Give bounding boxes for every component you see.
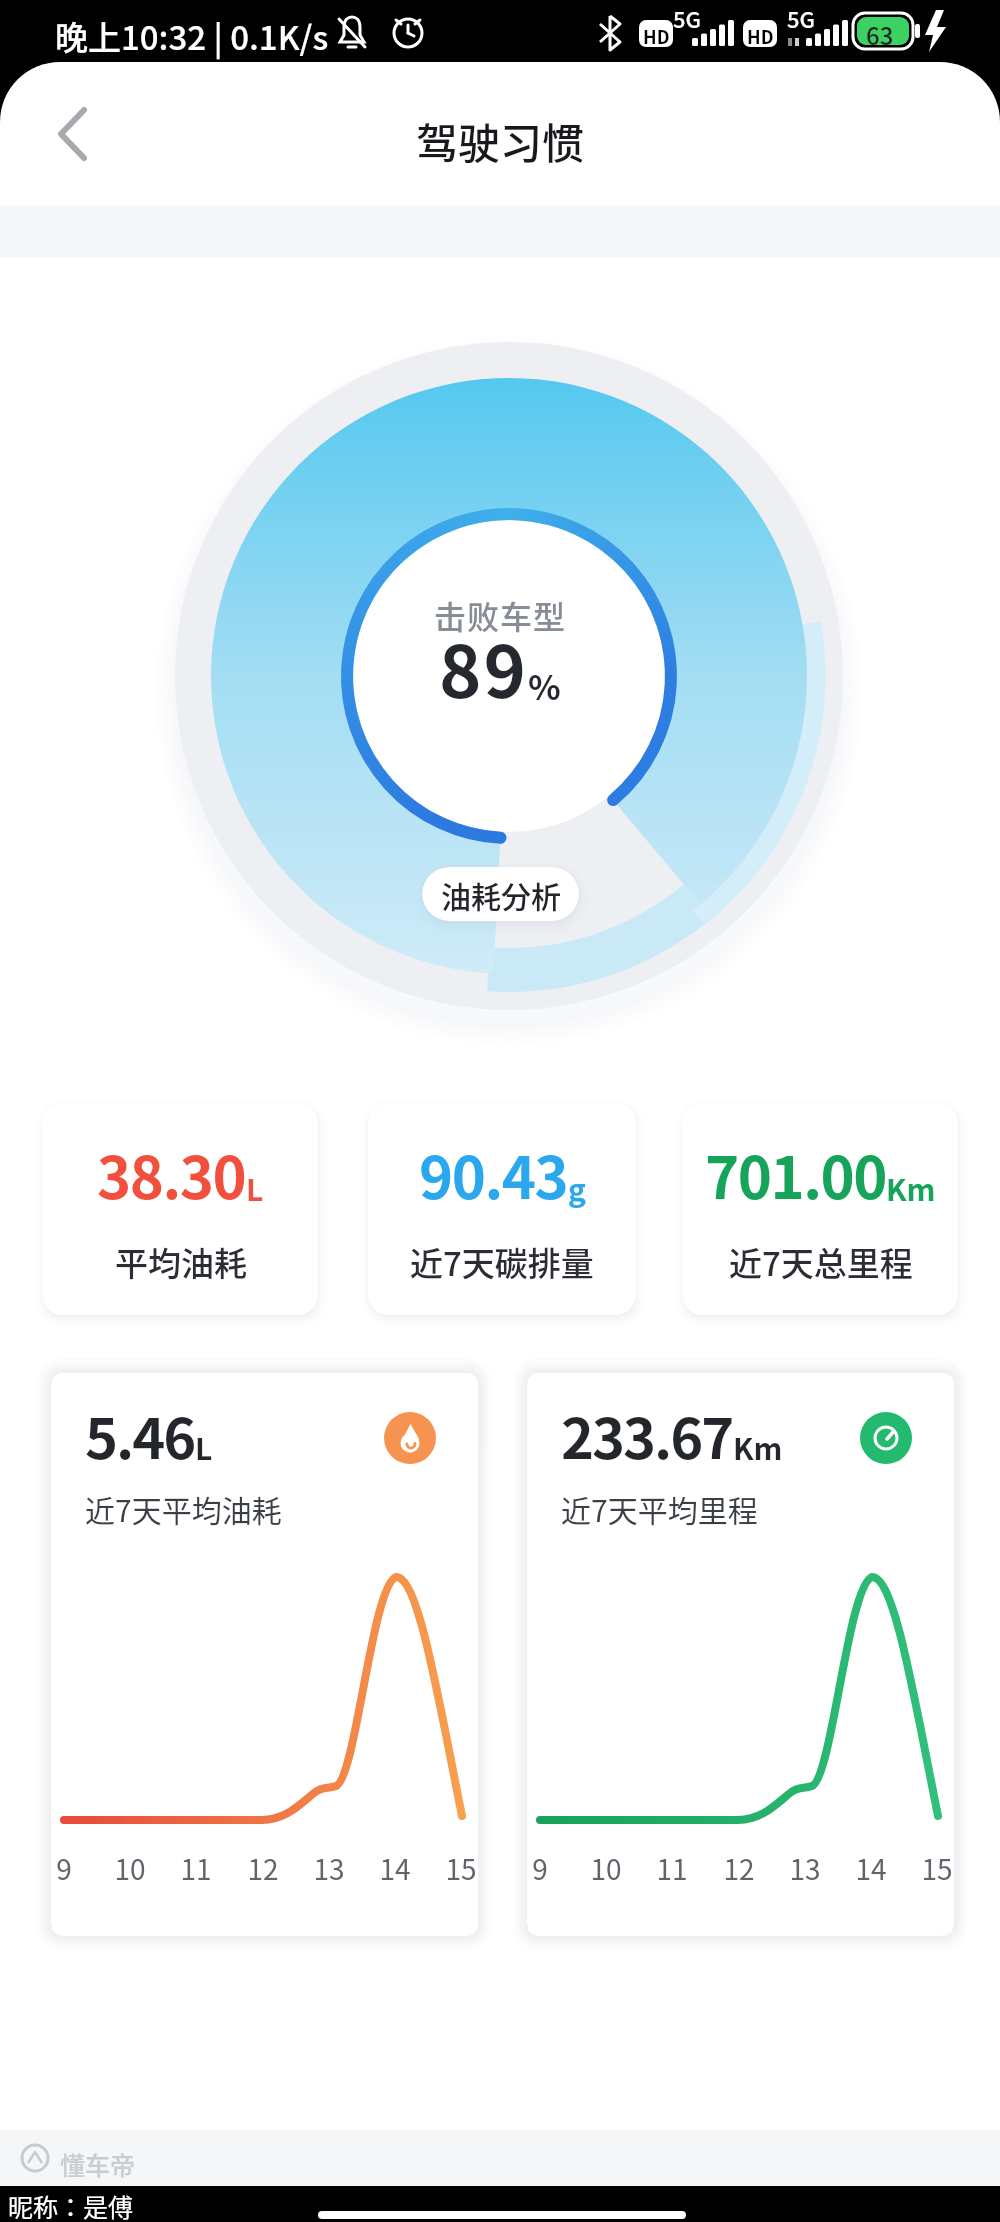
button[interactable]: 701.00	[682, 1103, 958, 1315]
staticText: 5G	[787, 2, 815, 34]
staticText: Km	[733, 1425, 783, 1468]
button[interactable]	[518, 1360, 958, 1935]
staticText: 晚上10:32 | 0.1K/s	[55, 12, 329, 60]
staticText: 10	[590, 1848, 622, 1889]
staticText: 13	[313, 1848, 345, 1889]
staticText: 近7天平均油耗	[85, 1487, 282, 1530]
staticText: %	[528, 661, 561, 710]
staticText: 11	[656, 1848, 688, 1889]
staticText: 近7天总里程	[729, 1238, 913, 1286]
staticText: 14	[855, 1848, 887, 1889]
staticText: 平均油耗	[115, 1238, 247, 1286]
staticText: 701.00	[705, 1132, 886, 1216]
staticText: HD	[643, 23, 670, 49]
staticText: 昵称：是傅	[8, 2188, 134, 2222]
staticText: 233.67	[561, 1394, 733, 1475]
staticText: Km	[886, 1166, 936, 1209]
button[interactable]	[30, 102, 110, 182]
button[interactable]	[42, 1360, 482, 1935]
staticText: 13	[789, 1848, 821, 1889]
staticText: 9	[532, 1848, 548, 1889]
staticText: 9	[56, 1848, 72, 1889]
staticText: 驾驶习惯	[0, 110, 1000, 171]
staticText: 5G	[673, 2, 701, 34]
staticText: HD	[747, 23, 774, 49]
button[interactable]: 38.30	[42, 1103, 318, 1315]
staticText: 15	[921, 1848, 953, 1889]
staticText: 10	[114, 1848, 146, 1889]
staticText: 63	[866, 17, 894, 52]
staticText: L	[246, 1166, 264, 1209]
staticText: 90.43	[419, 1132, 568, 1216]
button[interactable]: 90.43	[368, 1103, 636, 1315]
staticText: 15	[445, 1848, 477, 1889]
staticText: 近7天碳排量	[410, 1238, 594, 1286]
staticText: 14	[379, 1848, 411, 1889]
staticText: L	[195, 1425, 213, 1468]
staticText: 89	[439, 614, 528, 718]
staticText: 近7天平均里程	[561, 1487, 758, 1530]
staticText: 懂车帝	[60, 2146, 136, 2182]
staticText: g	[568, 1166, 586, 1209]
staticText: 5.46	[85, 1394, 195, 1475]
staticText: 油耗分析	[441, 873, 561, 916]
staticText: 12	[247, 1848, 279, 1889]
staticText: 12	[723, 1848, 755, 1889]
staticText: 11	[180, 1848, 212, 1889]
staticText: 击败车型	[0, 592, 1000, 638]
staticText: 38.30	[97, 1132, 246, 1216]
button[interactable]: 油耗分析	[422, 867, 579, 921]
